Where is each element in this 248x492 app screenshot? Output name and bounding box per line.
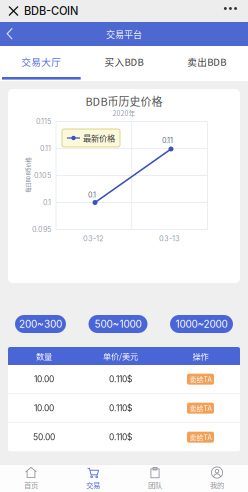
button[interactable]: 卖给TA [187, 403, 214, 414]
staticText: 每日BDB币价格 [10, 171, 45, 179]
button[interactable]: 交易大厅 [0, 46, 83, 81]
staticText: 10.00 [34, 374, 54, 384]
staticText: 交易 [86, 479, 100, 490]
staticText: 最新价格 [83, 132, 115, 144]
staticText: 0.115 [36, 117, 51, 126]
staticText: 团队 [148, 479, 162, 490]
staticText: 交易平台 [106, 27, 142, 40]
staticText: 卖出BDB [187, 54, 226, 68]
staticText: 0.11 [162, 136, 173, 145]
button[interactable]: 首页 [0, 465, 62, 492]
staticText: 卖给TA [189, 374, 211, 384]
button[interactable]: 我的 [186, 465, 248, 492]
staticText: 卖给TA [189, 403, 211, 413]
staticText: 50.00 [33, 432, 55, 442]
staticText: 卖给TA [189, 432, 211, 442]
button[interactable]: 团队 [124, 465, 186, 492]
staticText: 操作 [192, 350, 208, 362]
staticText: BDB币历史价格 [85, 93, 162, 109]
staticText: 0.110$ [109, 374, 132, 384]
button[interactable]: Close [0, 0, 24, 22]
button[interactable]: More options [213, 0, 248, 22]
button[interactable]: 卖给TA [187, 432, 214, 443]
button[interactable]: 卖出BDB [165, 46, 248, 81]
staticText: 数量 [36, 350, 52, 362]
button[interactable]: 交易 [62, 465, 124, 492]
staticText: 0.110$ [109, 403, 132, 413]
staticText: 03-12 [83, 234, 104, 243]
button[interactable]: 买入BDB [83, 46, 165, 81]
staticText: 首页 [24, 479, 38, 490]
button[interactable]: Back [0, 22, 20, 46]
staticText: 10.00 [34, 403, 54, 413]
staticText: 0.110$ [109, 432, 132, 442]
staticText: 单价/美元 [103, 350, 138, 362]
staticText: 我的 [210, 479, 224, 490]
button[interactable]: 500~1000 [88, 315, 147, 333]
staticText: 交易大厅 [21, 54, 61, 68]
staticText: 03-13 [159, 234, 180, 243]
staticText: 0.105 [34, 171, 51, 180]
staticText: 1000~2000 [175, 318, 227, 330]
staticText: BDB-COIN [24, 4, 78, 18]
button[interactable]: 1000~2000 [170, 315, 233, 333]
staticText: 0.095 [32, 225, 51, 234]
staticText: 200~300 [19, 318, 62, 330]
staticText: 买入BDB [104, 54, 143, 68]
button[interactable]: 卖给TA [187, 374, 214, 385]
staticText: 0.11 [40, 144, 51, 153]
button[interactable]: 200~300 [15, 315, 66, 333]
staticText: 0.1 [88, 190, 96, 199]
staticText: 2020年 [112, 108, 135, 118]
staticText: 500~1000 [94, 318, 141, 330]
staticText: 0.1 [43, 198, 51, 207]
